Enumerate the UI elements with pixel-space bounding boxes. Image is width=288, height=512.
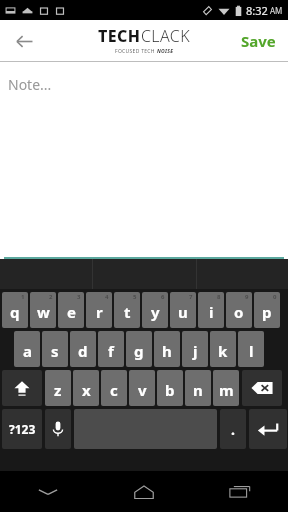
button[interactable]: v: [129, 370, 155, 406]
button[interactable]: Back: [0, 20, 48, 62]
staticText: 2: [49, 293, 53, 301]
staticText: m: [219, 380, 234, 400]
button[interactable]: r: [86, 292, 112, 328]
staticText: r: [96, 302, 103, 322]
button[interactable]: o: [226, 292, 252, 328]
button[interactable]: e: [58, 292, 84, 328]
button[interactable]: a: [14, 331, 40, 367]
button[interactable]: ?123: [2, 409, 42, 449]
button[interactable]: u: [170, 292, 196, 328]
staticText: 4: [105, 293, 109, 301]
button[interactable]: Home: [96, 471, 192, 512]
staticText: NOISE: [157, 48, 174, 55]
button[interactable]: Voice input: [45, 409, 71, 449]
staticText: i: [209, 302, 214, 322]
button[interactable]: Save: [229, 20, 288, 62]
staticText: 3: [77, 293, 81, 301]
staticText: ?123: [9, 421, 36, 437]
staticText: TECH: [98, 25, 141, 47]
staticText: CLACK: [141, 25, 190, 47]
staticText: 7: [189, 293, 193, 301]
button[interactable]: m: [213, 370, 239, 406]
button[interactable]: Note...: [0, 62, 288, 259]
staticText: e: [67, 302, 76, 322]
button[interactable]: Recent apps: [192, 471, 288, 512]
button[interactable]: j: [182, 331, 208, 367]
staticText: t: [124, 302, 131, 322]
button[interactable]: c: [101, 370, 127, 406]
button[interactable]: x: [73, 370, 99, 406]
staticText: 8: [217, 293, 221, 301]
staticText: AM: [270, 5, 283, 16]
button[interactable]: f: [98, 331, 124, 367]
staticText: f: [108, 341, 114, 361]
staticText: o: [234, 302, 244, 322]
staticText: .: [231, 420, 235, 439]
button[interactable]: q: [2, 292, 28, 328]
button[interactable]: h: [154, 331, 180, 367]
staticText: Save: [241, 31, 276, 51]
staticText: 8:32: [246, 3, 268, 18]
staticText: d: [78, 341, 88, 361]
button[interactable]: s: [42, 331, 68, 367]
staticText: n: [193, 380, 203, 400]
staticText: v: [138, 380, 147, 400]
button[interactable]: t: [114, 292, 140, 328]
staticText: 1: [21, 293, 25, 301]
staticText: s: [51, 341, 59, 361]
button[interactable]: p: [254, 292, 280, 328]
staticText: FOCUSED TECH: [115, 48, 157, 55]
button[interactable]: k: [210, 331, 236, 367]
button[interactable]: Enter: [249, 409, 287, 449]
button[interactable]: z: [45, 370, 71, 406]
staticText: 6: [161, 293, 165, 301]
staticText: j: [193, 341, 198, 361]
staticText: l: [249, 341, 254, 361]
staticText: 0: [273, 293, 277, 301]
staticText: w: [37, 302, 50, 322]
button[interactable]: Hide keyboard: [0, 471, 96, 512]
staticText: y: [151, 302, 160, 322]
staticText: p: [262, 302, 272, 322]
staticText: z: [54, 380, 62, 400]
staticText: x: [82, 380, 91, 400]
button[interactable]: i: [198, 292, 224, 328]
staticText: c: [110, 380, 118, 400]
staticText: 5: [133, 293, 137, 301]
button[interactable]: n: [185, 370, 211, 406]
staticText: q: [10, 302, 20, 322]
button[interactable]: Shift: [2, 370, 42, 406]
button[interactable]: Backspace: [242, 370, 282, 406]
button[interactable]: d: [70, 331, 96, 367]
staticText: Note...: [8, 75, 52, 94]
staticText: k: [218, 341, 228, 361]
staticText: g: [134, 341, 144, 361]
button[interactable]: y: [142, 292, 168, 328]
staticText: h: [162, 341, 172, 361]
button[interactable]: l: [238, 331, 264, 367]
button[interactable]: w: [30, 292, 56, 328]
button[interactable]: .: [220, 409, 246, 449]
button[interactable]: b: [157, 370, 183, 406]
button[interactable]: g: [126, 331, 152, 367]
staticText: b: [165, 380, 175, 400]
staticText: a: [23, 341, 32, 361]
staticText: u: [178, 302, 188, 322]
staticText: 9: [245, 293, 249, 301]
